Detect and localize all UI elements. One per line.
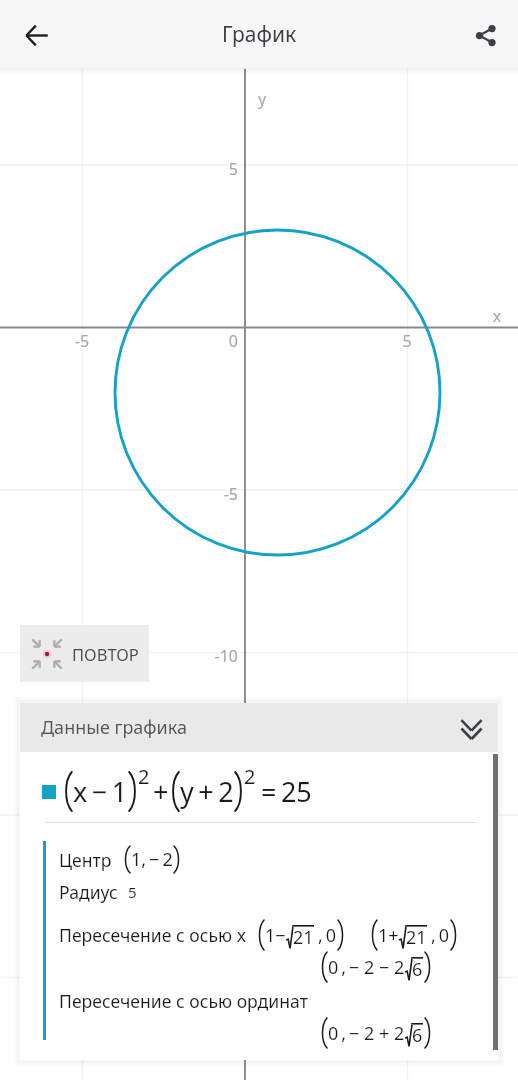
staticText: 6	[412, 957, 423, 982]
staticText: Пересечение с осью ординат	[59, 989, 308, 1013]
staticText: Центр	[59, 848, 112, 872]
staticText: x	[467, 305, 518, 327]
staticText: Данные графика	[41, 715, 187, 740]
staticText: y	[232, 88, 292, 110]
staticText: = 25	[261, 773, 312, 810]
button[interactable]: Данные графика	[20, 703, 498, 752]
staticText: 5	[178, 158, 238, 180]
staticText: y + 2	[180, 773, 234, 810]
button[interactable]: Share	[461, 11, 509, 59]
staticText: +	[153, 773, 169, 810]
staticText: , 0	[428, 923, 450, 948]
staticText: Радиус	[59, 880, 118, 904]
staticText: 0	[178, 330, 238, 352]
button[interactable]: Collapse	[448, 705, 494, 751]
staticText: 6	[412, 1023, 423, 1048]
staticText: График	[222, 20, 297, 49]
staticText: 5	[128, 882, 137, 902]
staticText: 2	[244, 763, 256, 790]
staticText: 2	[138, 763, 150, 790]
staticText: -5	[178, 483, 238, 505]
staticText: -5	[52, 330, 112, 352]
staticText: 0 , − 2 − 2	[328, 955, 405, 980]
staticText: 21	[406, 925, 427, 950]
staticText: 21	[293, 925, 314, 950]
staticText: 1−	[265, 923, 286, 948]
staticText: 1+	[378, 923, 399, 948]
staticText: ПОВТОР	[72, 643, 139, 665]
button[interactable]: x − 1	[20, 756, 498, 818]
staticText: Пересечение с осью x	[59, 923, 246, 947]
staticText: 0 , − 2 + 2	[328, 1021, 405, 1046]
staticText: , 0	[315, 923, 337, 948]
staticText: 5	[377, 330, 437, 352]
staticText: 1, − 2	[131, 847, 173, 872]
button[interactable]: Back	[12, 11, 60, 59]
button[interactable]: ПОВТОР	[20, 625, 149, 682]
staticText: x − 1	[73, 773, 128, 810]
staticText: -10	[178, 645, 238, 667]
